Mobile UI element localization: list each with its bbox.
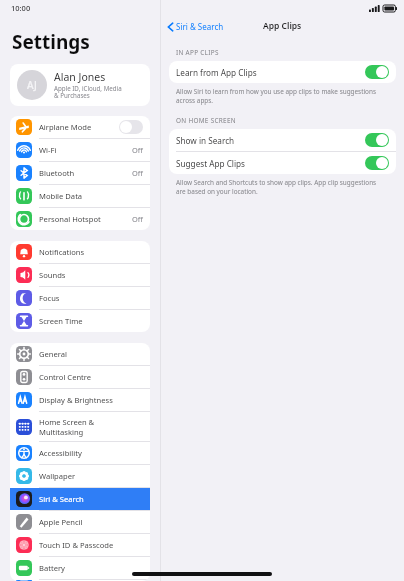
- button[interactable]: Accessibility: [10, 442, 150, 464]
- staticText: Personal Hotspot: [39, 214, 132, 224]
- staticText: Apple ID, iCloud, Media & Purchases: [54, 84, 122, 100]
- staticText: Siri & Search: [176, 21, 224, 32]
- button[interactable]: Wi-Fi: [10, 139, 150, 161]
- button[interactable]: Screen Time: [10, 310, 150, 332]
- button[interactable]: Personal Hotspot: [10, 208, 150, 230]
- staticText: Touch ID & Passcode: [39, 540, 143, 550]
- button[interactable]: Wallpaper: [10, 465, 150, 487]
- button[interactable]: Sounds: [10, 264, 150, 286]
- button[interactable]: [119, 120, 143, 134]
- staticText: Battery: [39, 563, 143, 573]
- staticText: Sounds: [39, 270, 143, 280]
- button[interactable]: [365, 65, 389, 79]
- staticText: Siri & Search: [39, 494, 143, 504]
- button[interactable]: Privacy & Security: [10, 580, 150, 581]
- button[interactable]: Suggest App Clips: [169, 152, 396, 174]
- staticText: ON HOME SCREEN: [176, 116, 236, 125]
- staticText: Notifications: [39, 247, 143, 257]
- staticText: Wi-Fi: [39, 145, 132, 155]
- staticText: Off: [132, 214, 143, 224]
- button[interactable]: Siri & Search: [10, 488, 150, 510]
- staticText: Focus: [39, 293, 143, 303]
- button[interactable]: Bluetooth: [10, 162, 150, 184]
- button[interactable]: Mobile Data: [10, 185, 150, 207]
- staticText: Suggest App Clips: [176, 158, 365, 169]
- button[interactable]: Home Screen & Multitasking: [10, 412, 150, 441]
- button[interactable]: [365, 156, 389, 170]
- button[interactable]: Show in Search: [169, 129, 396, 151]
- staticText: Allow Search and Shortcuts to show app c…: [176, 178, 377, 196]
- staticText: Alan Jones: [54, 70, 106, 84]
- staticText: 10:00: [11, 3, 31, 13]
- staticText: Screen Time: [39, 316, 143, 326]
- button[interactable]: Focus: [10, 287, 150, 309]
- button[interactable]: Airplane Mode: [10, 116, 150, 138]
- button[interactable]: Battery: [10, 557, 150, 579]
- button[interactable]: Learn from App Clips: [169, 61, 396, 83]
- staticText: Airplane Mode: [39, 122, 119, 132]
- button[interactable]: Touch ID & Passcode: [10, 534, 150, 556]
- staticText: Accessibility: [39, 448, 143, 458]
- staticText: Off: [132, 168, 143, 178]
- button[interactable]: [365, 133, 389, 147]
- staticText: Control Centre: [39, 372, 143, 382]
- staticText: Bluetooth: [39, 168, 132, 178]
- button[interactable]: Notifications: [10, 241, 150, 263]
- staticText: Settings: [12, 29, 90, 55]
- staticText: IN APP CLIPS: [176, 48, 219, 57]
- button[interactable]: Control Centre: [10, 366, 150, 388]
- staticText: Mobile Data: [39, 191, 143, 201]
- staticText: Allow Siri to learn from how you use app…: [176, 87, 376, 105]
- staticText: Apple Pencil: [39, 517, 143, 527]
- staticText: Wallpaper: [39, 471, 143, 481]
- button[interactable]: Siri & Search: [165, 19, 226, 34]
- staticText: General: [39, 349, 143, 359]
- button[interactable]: Apple Pencil: [10, 511, 150, 533]
- staticText: Show in Search: [176, 135, 365, 146]
- button[interactable]: AJ: [10, 64, 150, 106]
- staticText: Home Screen & Multitasking: [39, 417, 143, 437]
- button[interactable]: Display & Brightness: [10, 389, 150, 411]
- staticText: Display & Brightness: [39, 395, 143, 405]
- staticText: Off: [132, 145, 143, 155]
- button[interactable]: General: [10, 343, 150, 365]
- staticText: Learn from App Clips: [176, 67, 365, 78]
- staticText: App Clips: [263, 20, 302, 32]
- staticText: AJ: [27, 78, 37, 92]
